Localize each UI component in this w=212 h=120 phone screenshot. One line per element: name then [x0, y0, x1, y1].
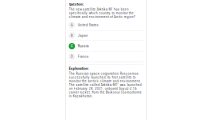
staticText: Question:: [69, 2, 84, 6]
staticText: Japan: [78, 34, 88, 38]
button[interactable]: A: [69, 20, 143, 31]
staticText: The new satellite 'Arktika-M' has been s…: [69, 7, 136, 19]
staticText: Explanation:: [69, 66, 89, 71]
staticText: C: [71, 44, 73, 48]
button[interactable]: C: [69, 41, 143, 52]
staticText: The Russian space corporation Roscosmos …: [69, 72, 142, 98]
button[interactable]: B: [69, 31, 143, 41]
button[interactable]: D: [69, 52, 143, 62]
staticText: B: [71, 34, 73, 38]
staticText: Russia: [78, 44, 89, 48]
staticText: A: [71, 23, 73, 27]
staticText: United States: [78, 23, 99, 27]
staticText: France: [78, 55, 89, 59]
staticText: D: [71, 55, 73, 59]
